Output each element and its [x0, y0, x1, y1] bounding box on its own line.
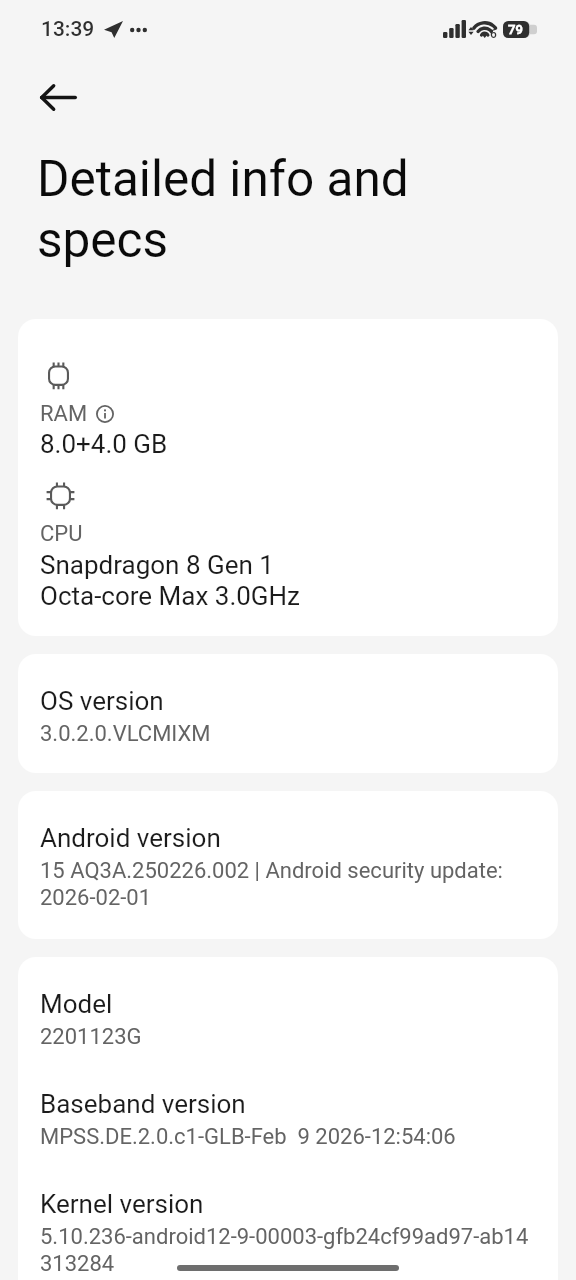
button[interactable]: RAM	[40, 362, 536, 459]
staticText: 8.0+4.0 GB	[40, 428, 168, 459]
staticText: 79	[508, 22, 523, 37]
button[interactable]: CPU	[40, 482, 536, 611]
staticText: 15 AQ3A.250226.002 | Android security up…	[40, 857, 503, 911]
staticText: Model	[40, 988, 113, 1019]
staticText: Android version	[40, 822, 221, 853]
staticText: Baseband version	[40, 1088, 246, 1119]
staticText: Kernel version	[40, 1188, 204, 1219]
staticText: 5.10.236-android12-9-00003-gfb24cf99ad97…	[40, 1223, 529, 1277]
staticText: 2201123G	[40, 1023, 142, 1050]
button[interactable]: Model	[18, 957, 558, 1280]
button[interactable]: Model	[40, 988, 536, 1050]
staticText: 6	[490, 27, 497, 41]
staticText: Snapdragon 8 Gen 1 Octa-core Max 3.0GHz	[40, 549, 300, 611]
staticText: RAM	[40, 400, 88, 427]
button[interactable]: RAM	[18, 319, 558, 636]
button[interactable]: Android version	[18, 791, 558, 939]
staticText: Detailed info and specs	[37, 148, 409, 270]
button[interactable]: Back	[0, 62, 84, 146]
staticText: OS version	[40, 685, 164, 716]
staticText: MPSS.DE.2.0.c1-GLB-Feb 9 2026-12:54:06	[40, 1123, 456, 1150]
button[interactable]: About RAM	[96, 405, 114, 423]
staticText: 3.0.2.0.VLCMIXM	[40, 720, 211, 747]
button[interactable]: OS version	[18, 654, 558, 773]
staticText: CPU	[40, 520, 83, 547]
staticText: 13:39	[41, 17, 95, 42]
button[interactable]: Baseband version	[40, 1088, 536, 1150]
button[interactable]: OS version	[40, 685, 536, 747]
button[interactable]: Kernel version	[40, 1188, 536, 1277]
button[interactable]: Android version	[40, 822, 536, 911]
